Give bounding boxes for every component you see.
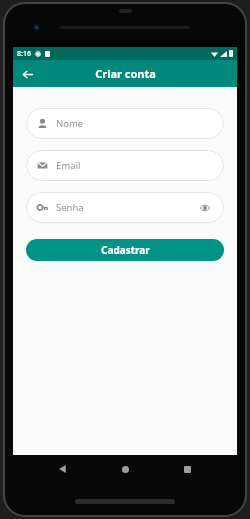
- staticText: Criar conta: [95, 66, 156, 81]
- staticText: 8:16: [17, 49, 31, 59]
- button[interactable]: Back: [51, 457, 75, 481]
- button[interactable]: Back: [16, 63, 38, 85]
- button[interactable]: Mostrar senha: [197, 200, 213, 216]
- button[interactable]: Email: [26, 150, 224, 181]
- staticText: Nome: [56, 117, 84, 130]
- button[interactable]: Recents: [175, 457, 199, 481]
- button[interactable]: Senha: [26, 192, 224, 223]
- button[interactable]: Home: [113, 457, 137, 481]
- staticText: Email: [56, 159, 81, 172]
- button[interactable]: Cadastrar: [26, 239, 224, 261]
- staticText: Cadastrar: [101, 243, 150, 257]
- button[interactable]: Nome: [26, 108, 224, 139]
- staticText: Senha: [56, 201, 84, 214]
